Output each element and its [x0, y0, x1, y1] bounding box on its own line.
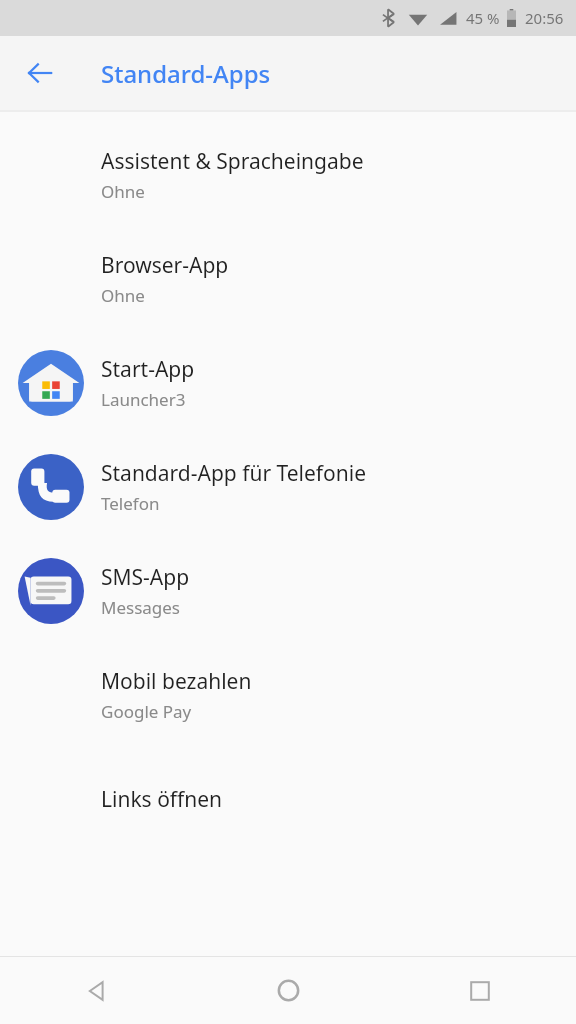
staticText: Assistent & Spracheingabe	[101, 147, 364, 176]
staticText: Browser-App	[101, 251, 229, 280]
staticText: Telefon	[101, 492, 160, 515]
button[interactable]: Zurück	[16, 49, 64, 97]
button[interactable]: Startbildschirm	[192, 957, 384, 1024]
staticText: Launcher3	[101, 388, 186, 411]
button[interactable]: Zurück	[0, 957, 192, 1024]
staticText: Ohne	[101, 284, 145, 307]
staticText: 45 %	[466, 8, 500, 28]
staticText: Start-App	[101, 355, 195, 384]
staticText: SMS-App	[101, 563, 190, 592]
button[interactable]: Übersicht	[384, 957, 576, 1024]
staticText: 20:56	[525, 8, 564, 28]
staticText: Messages	[101, 596, 181, 619]
staticText: Ohne	[101, 180, 145, 203]
staticText: Links öffnen	[101, 785, 223, 814]
staticText: Standard-App für Telefonie	[101, 459, 367, 488]
staticText: Google Pay	[101, 700, 192, 723]
button[interactable]: SMS-App	[0, 539, 576, 643]
staticText: Mobil bezahlen	[101, 667, 252, 696]
button[interactable]: Mobil bezahlen	[0, 643, 576, 747]
button[interactable]: Browser-App	[0, 227, 576, 331]
button[interactable]: Links öffnen	[0, 747, 576, 851]
button[interactable]: Start-App	[0, 331, 576, 435]
button[interactable]: Standard-App für Telefonie	[0, 435, 576, 539]
staticText: Standard-Apps	[101, 57, 271, 90]
button[interactable]: Assistent & Spracheingabe	[0, 123, 576, 227]
